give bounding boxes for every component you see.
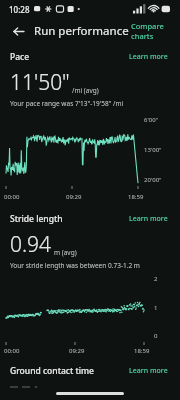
staticText: 09:29 [66, 193, 82, 201]
staticText: 10:28 [9, 4, 30, 15]
staticText: Pace [10, 51, 30, 63]
staticText: 18:59 [128, 193, 144, 201]
staticText: Stride length [10, 213, 63, 225]
staticText: Ground contact time [10, 365, 94, 377]
staticText: 0 [154, 332, 158, 340]
staticText: 11'50" [10, 68, 70, 97]
staticText: Your pace range was 7'13"-19'58" /mi [10, 99, 124, 108]
staticText: 00:00 [4, 347, 20, 355]
staticText: m (avg) [54, 248, 77, 257]
staticText: 20'00" [144, 176, 162, 184]
button[interactable]: Compare charts [129, 19, 170, 43]
staticText: Learn more [129, 366, 168, 376]
staticText: Run performance [34, 23, 129, 39]
staticText: 1 [154, 304, 158, 312]
staticText: 09:29 [69, 347, 85, 355]
button[interactable]: Learn more [127, 50, 170, 64]
staticText: 00:00 [4, 193, 20, 201]
button[interactable]: Learn more [127, 212, 170, 226]
button[interactable]: Learn more [127, 364, 170, 378]
staticText: 18:59 [134, 347, 150, 355]
staticText: Your stride length was between 0.73-1.2 … [10, 261, 140, 270]
button[interactable]: Back [8, 21, 28, 41]
staticText: 6'00" [144, 116, 159, 124]
staticText: Learn more [129, 52, 168, 62]
staticText: 2 [154, 275, 158, 283]
staticText: Learn more [129, 214, 168, 224]
staticText: /mi (avg) [72, 86, 99, 95]
staticText: 0.94 [10, 230, 52, 259]
staticText: Compare charts [131, 21, 168, 41]
staticText: 13'00" [144, 146, 162, 154]
